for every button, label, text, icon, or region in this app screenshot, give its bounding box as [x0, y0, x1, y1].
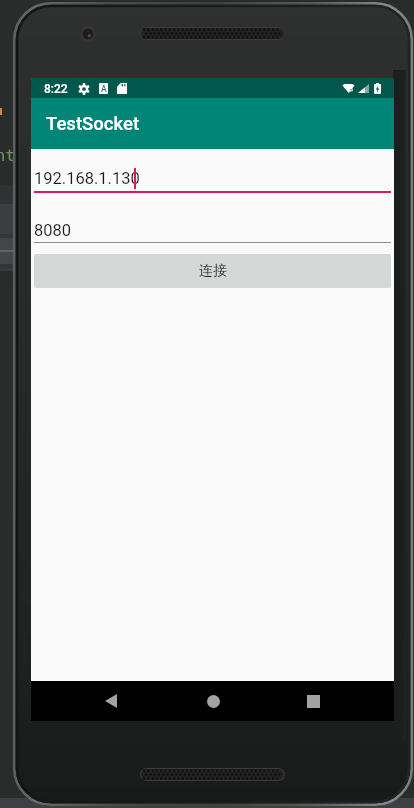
staticText: TestSocket — [46, 113, 140, 135]
button[interactable]: Recent apps — [292, 681, 334, 721]
button[interactable]: 连接 — [34, 254, 391, 288]
staticText: 192.168.1.130 — [34, 169, 140, 188]
staticText: A — [101, 84, 107, 94]
staticText: 8:22 — [44, 82, 68, 96]
button[interactable]: 192.168.1.130 — [31, 149, 394, 183]
button[interactable]: Home — [192, 681, 234, 721]
staticText: nt — [0, 143, 16, 166]
staticText: 8080 — [34, 221, 72, 240]
button[interactable]: Back — [90, 681, 132, 721]
staticText: 连接 — [199, 262, 227, 280]
